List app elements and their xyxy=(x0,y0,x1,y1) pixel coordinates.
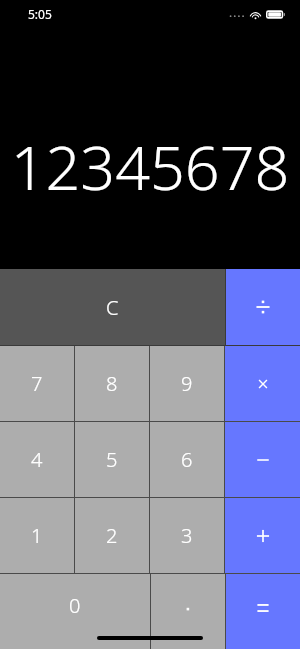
staticText: C xyxy=(106,294,119,321)
staticText: 3 xyxy=(181,522,193,549)
staticText: 2 xyxy=(106,522,118,549)
other: Divide xyxy=(255,299,271,315)
other: Equals xyxy=(255,600,271,616)
other: Multiply xyxy=(256,377,270,391)
button[interactable]: Decimal point xyxy=(151,574,225,649)
button[interactable]: Divide xyxy=(226,269,300,345)
staticText: 5 xyxy=(106,446,118,473)
staticText: 4 xyxy=(31,446,43,473)
button[interactable]: 2 xyxy=(75,498,149,573)
staticText: 9 xyxy=(181,370,193,397)
button[interactable]: Minus xyxy=(225,422,300,497)
staticText: 7 xyxy=(31,370,43,397)
button[interactable]: 7 xyxy=(0,346,74,421)
button[interactable]: 4 xyxy=(0,422,74,497)
other: Minus xyxy=(255,452,271,468)
button[interactable]: Multiply xyxy=(225,346,300,421)
staticText: 6 xyxy=(181,446,193,473)
button[interactable]: 5 xyxy=(75,422,149,497)
staticText: 1 xyxy=(31,522,43,549)
staticText: 8 xyxy=(106,370,118,397)
other: Plus xyxy=(255,528,271,544)
button[interactable]: Equals xyxy=(226,574,300,649)
button[interactable]: 8 xyxy=(75,346,149,421)
button[interactable]: C xyxy=(0,269,225,345)
button[interactable]: 3 xyxy=(150,498,224,573)
button[interactable]: 0 xyxy=(0,574,150,649)
staticText: 0 xyxy=(69,592,81,619)
button[interactable]: 6 xyxy=(150,422,224,497)
button[interactable]: Plus xyxy=(225,498,300,573)
staticText: 1234567890 xyxy=(6,125,294,208)
other: Decimal point xyxy=(183,603,193,613)
button[interactable]: 1 xyxy=(0,498,74,573)
staticText: 5:05 xyxy=(28,6,52,22)
button[interactable]: 9 xyxy=(150,346,224,421)
